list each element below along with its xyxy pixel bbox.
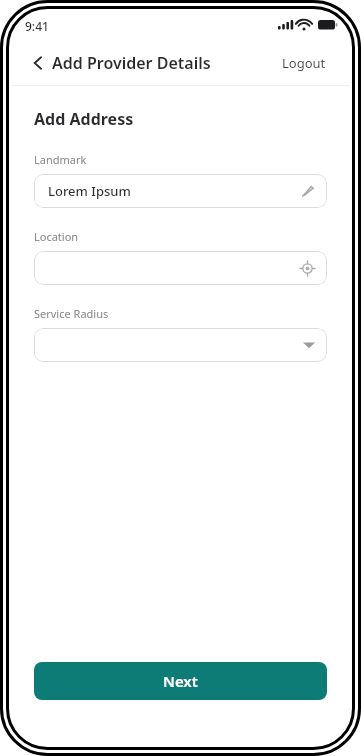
staticText: Service Radius: [34, 306, 109, 321]
button[interactable]: Back: [31, 52, 215, 74]
staticText: 9:41: [25, 18, 49, 34]
staticText: Add Address: [34, 108, 134, 130]
button[interactable]: Lorem Ipsum: [34, 174, 327, 208]
staticText: Add Provider Details: [52, 52, 211, 74]
button[interactable]: Logout: [278, 50, 330, 76]
staticText: Location: [34, 229, 79, 244]
staticText: Next: [163, 671, 198, 691]
staticText: Logout: [282, 54, 326, 72]
button[interactable]: Next: [34, 662, 327, 700]
button[interactable]: [34, 328, 327, 362]
staticText: Lorem Ipsum: [48, 182, 131, 200]
staticText: Landmark: [34, 152, 87, 167]
button[interactable]: [34, 251, 327, 285]
